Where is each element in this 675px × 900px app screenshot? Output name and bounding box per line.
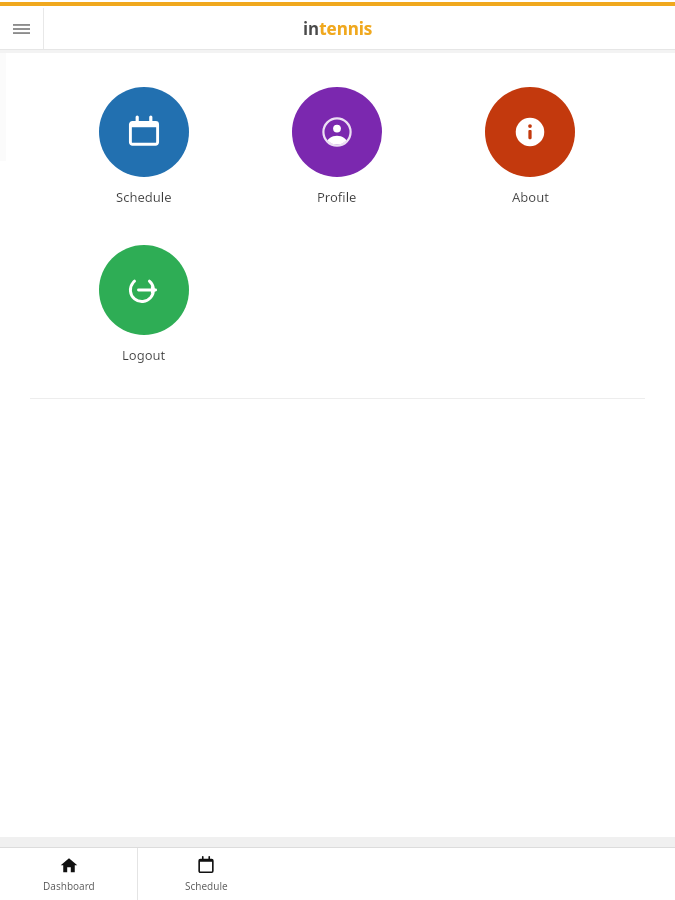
button[interactable]: Dashboard bbox=[0, 848, 137, 900]
staticText: Logout bbox=[122, 346, 166, 364]
staticText: About bbox=[512, 188, 549, 206]
staticText: Schedule bbox=[185, 879, 228, 893]
button[interactable]: About bbox=[485, 87, 575, 206]
button[interactable]: Schedule bbox=[99, 87, 189, 206]
button[interactable]: Profile bbox=[292, 87, 382, 206]
staticText: intennis bbox=[303, 17, 373, 40]
staticText: Dashboard bbox=[43, 879, 95, 893]
button[interactable]: Open navigation menu bbox=[0, 8, 43, 49]
button[interactable]: Schedule bbox=[138, 848, 274, 900]
staticText: Schedule bbox=[116, 188, 172, 206]
staticText: Profile bbox=[317, 188, 357, 206]
button[interactable]: Logout bbox=[99, 245, 189, 364]
